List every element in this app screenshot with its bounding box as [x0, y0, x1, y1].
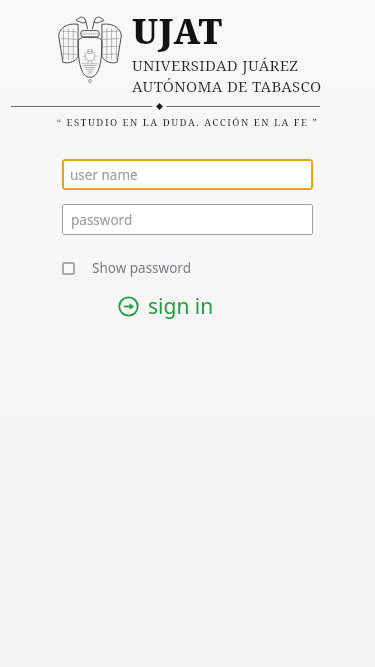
button[interactable]: password: [62, 204, 313, 235]
button[interactable]: user name: [62, 159, 313, 190]
staticText: UNIVERSIDAD JUÁREZ: [132, 55, 299, 75]
button[interactable]: Sign in: [118, 289, 214, 323]
button[interactable]: Show password: [62, 255, 191, 281]
other: Sign in: [118, 296, 139, 317]
staticText: “ ESTUDIO EN LA DUDA. ACCIÓN EN LA FE ”: [12, 116, 363, 129]
staticText: sign in: [148, 292, 214, 321]
staticText: password: [71, 211, 133, 229]
staticText: Show password: [92, 259, 191, 277]
staticText: UJAT: [132, 8, 223, 54]
staticText: user name: [70, 166, 138, 184]
staticText: AUTÓNOMA DE TABASCO: [132, 76, 322, 96]
